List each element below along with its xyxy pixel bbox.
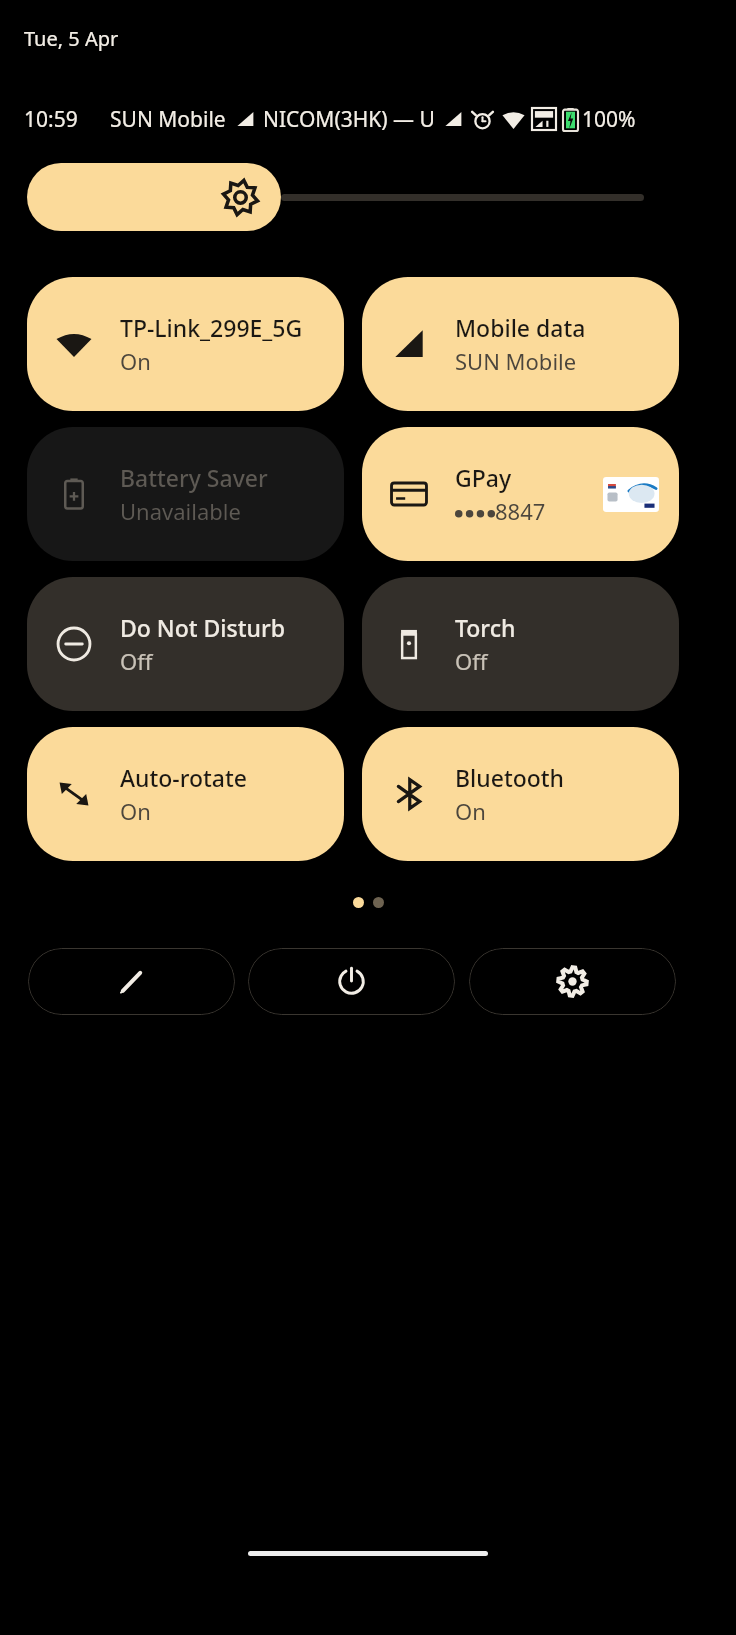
- staticText: SUN Mobile: [455, 346, 577, 376]
- staticText: 10:59: [24, 105, 78, 134]
- button[interactable]: Power: [248, 948, 455, 1015]
- staticText: On: [120, 346, 151, 376]
- button[interactable]: Auto-rotate: [27, 727, 344, 861]
- staticText: On: [455, 796, 486, 826]
- button[interactable]: Battery Saver: [27, 427, 344, 561]
- staticText: On: [120, 796, 151, 826]
- staticText: Torch: [455, 612, 516, 643]
- staticText: Bluetooth: [455, 762, 565, 793]
- staticText: Mobile data: [455, 312, 586, 343]
- staticText: Off: [455, 646, 488, 676]
- button[interactable]: Mobile data: [362, 277, 679, 411]
- button[interactable]: Edit: [28, 948, 235, 1015]
- staticText: NICOM(3HK) — U: [263, 105, 435, 134]
- button[interactable]: Torch: [362, 577, 679, 711]
- staticText: Do Not Disturb: [120, 612, 285, 643]
- staticText: 100%: [582, 105, 636, 134]
- button[interactable]: Settings: [469, 948, 676, 1015]
- staticText: TP-Link_299E_5G: [120, 312, 303, 343]
- button[interactable]: Do Not Disturb: [27, 577, 344, 711]
- staticText: Off: [120, 646, 153, 676]
- button[interactable]: Brightness: [27, 163, 644, 231]
- button[interactable]: Bluetooth: [362, 727, 679, 861]
- button[interactable]: GPay: [362, 427, 679, 561]
- staticText: Tue, 5 Apr: [24, 25, 119, 52]
- staticText: Unavailable: [120, 496, 241, 526]
- staticText: Battery Saver: [120, 462, 268, 493]
- staticText: SUN Mobile: [110, 105, 226, 134]
- staticText: GPay: [455, 462, 512, 493]
- button[interactable]: TP-Link_299E_5G: [27, 277, 344, 411]
- staticText: 8847: [495, 496, 546, 526]
- staticText: Auto-rotate: [120, 762, 248, 793]
